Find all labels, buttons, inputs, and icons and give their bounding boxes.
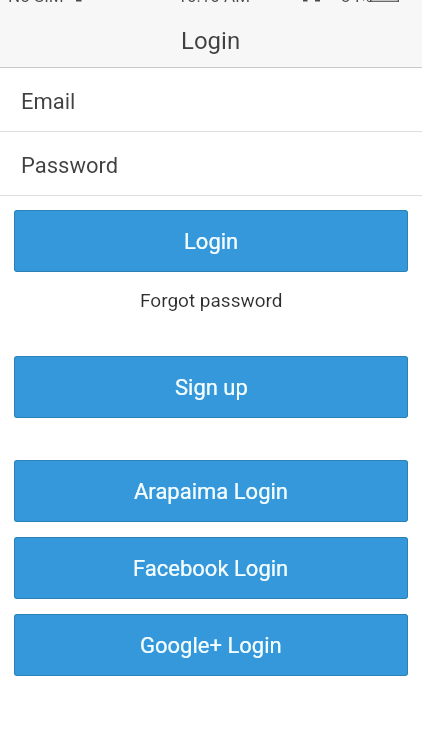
staticText: Google+ Login bbox=[140, 633, 282, 659]
button[interactable]: Facebook Login bbox=[14, 537, 408, 599]
button[interactable]: Password bbox=[0, 132, 422, 195]
staticText: Facebook Login bbox=[133, 556, 289, 582]
staticText: Password bbox=[21, 153, 119, 179]
staticText: Forgot password bbox=[140, 289, 283, 311]
staticText: Sign up bbox=[175, 375, 248, 401]
staticText: Login bbox=[181, 27, 241, 55]
button[interactable]: Email bbox=[0, 68, 422, 131]
button[interactable]: Arapaima Login bbox=[14, 460, 408, 522]
staticText: Arapaima Login bbox=[134, 479, 288, 505]
button[interactable]: Forgot password bbox=[0, 286, 422, 314]
button[interactable]: Google+ Login bbox=[14, 614, 408, 676]
button[interactable]: Sign up bbox=[14, 356, 408, 418]
button[interactable]: Login bbox=[14, 210, 408, 272]
staticText: Email bbox=[21, 89, 76, 115]
staticText: Login bbox=[184, 229, 239, 255]
